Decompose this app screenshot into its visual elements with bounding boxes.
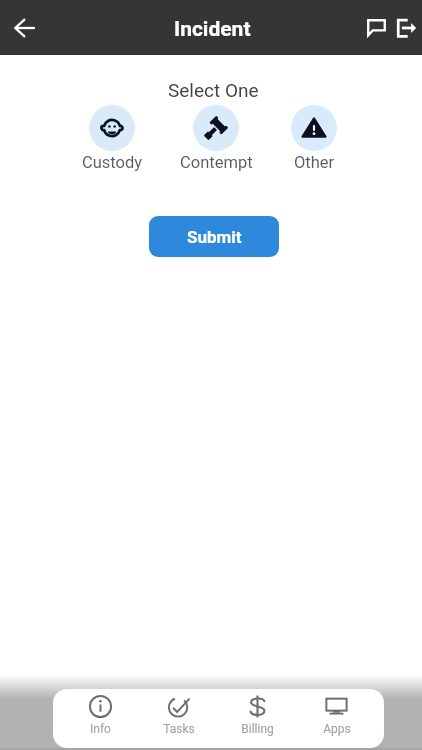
button[interactable]: Contempt (170, 105, 262, 172)
staticText: Select One (168, 79, 259, 101)
button[interactable]: Other (268, 105, 360, 172)
staticText: Other (294, 153, 335, 172)
staticText: Submit (187, 227, 242, 247)
staticText: Info (90, 722, 111, 736)
staticText: Custody (82, 153, 143, 172)
button[interactable]: Back (7, 10, 43, 46)
button[interactable]: Log out (391, 13, 421, 43)
staticText: Tasks (163, 722, 195, 736)
button[interactable]: Apps (297, 689, 376, 748)
button[interactable]: Custody (66, 105, 158, 172)
staticText: Contempt (180, 153, 253, 172)
button[interactable]: Tasks (139, 689, 218, 748)
staticText: Incident (174, 17, 251, 42)
staticText: Apps (323, 722, 351, 736)
staticText: Billing (241, 722, 274, 736)
button[interactable]: Billing (218, 689, 297, 748)
button[interactable]: Info (61, 689, 139, 748)
button[interactable]: Submit (149, 216, 279, 257)
button[interactable]: Messages (361, 13, 391, 43)
